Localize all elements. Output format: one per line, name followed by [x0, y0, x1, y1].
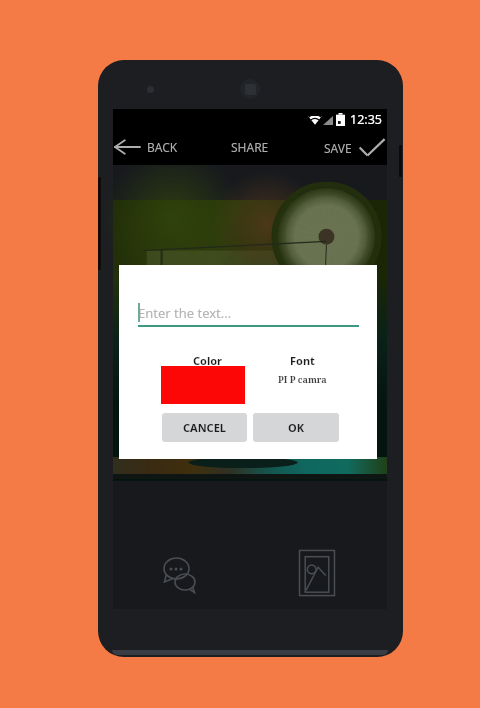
button[interactable]: SAVE	[318, 131, 386, 164]
staticText: BACK	[147, 139, 178, 155]
button[interactable]: Add text bubble	[157, 553, 205, 599]
button[interactable]: OK	[253, 413, 339, 442]
button[interactable]: CANCEL	[162, 413, 247, 442]
staticText: 12:35	[350, 111, 382, 128]
button[interactable]: BACK	[110, 133, 182, 161]
staticText: PI P camra	[278, 373, 327, 385]
staticText: CANCEL	[183, 420, 226, 435]
staticText: Font	[290, 353, 315, 366]
staticText: Enter the text...	[138, 304, 232, 322]
button[interactable]: SHARE	[225, 131, 275, 163]
staticText: OK	[288, 420, 305, 435]
staticText: SHARE	[231, 139, 269, 155]
staticText: Color	[193, 353, 223, 366]
button[interactable]: Add image	[298, 549, 336, 597]
button[interactable]: PI P camra	[259, 373, 345, 385]
staticText: SAVE	[324, 140, 352, 156]
